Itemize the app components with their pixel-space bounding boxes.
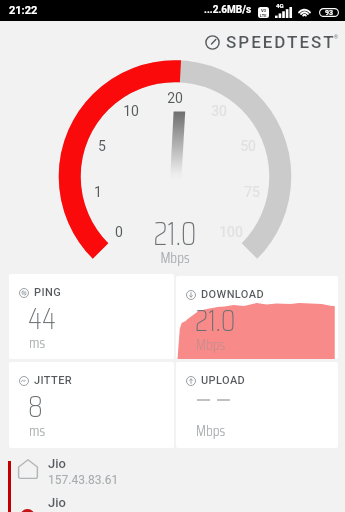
staticText: PING	[34, 286, 62, 299]
staticText: JITTER	[34, 374, 73, 387]
staticText: Jio	[48, 456, 66, 471]
button[interactable]: SPEEDTEST	[205, 30, 340, 54]
staticText: 4G	[276, 2, 284, 9]
staticText: 75	[244, 184, 260, 200]
staticText: 10	[123, 103, 139, 119]
staticText: Jio	[48, 495, 66, 510]
staticText: 21.0	[195, 297, 236, 344]
staticText: Mbps	[131, 246, 219, 270]
staticText: 100	[219, 224, 243, 240]
staticText: ...2.6MB/s	[204, 4, 252, 16]
staticText: ®	[334, 34, 338, 40]
button[interactable]: DOWNLOAD	[176, 276, 338, 359]
staticText: 1	[94, 184, 102, 200]
staticText: 5	[98, 138, 106, 154]
staticText: 50	[240, 138, 256, 154]
button[interactable]: UPLOAD	[176, 362, 338, 448]
staticText: ms	[29, 419, 46, 443]
staticText: 20	[167, 90, 183, 106]
staticText: 8	[28, 383, 43, 430]
button[interactable]: PING	[9, 274, 174, 359]
button[interactable]: JITTER	[9, 362, 174, 448]
staticText: Mbps	[196, 419, 226, 443]
staticText: 21.0	[131, 209, 219, 259]
staticText: 21:22	[9, 4, 38, 17]
staticText: LTE	[260, 13, 267, 18]
staticText: ms	[29, 331, 46, 355]
staticText: 0	[115, 224, 123, 240]
staticText: DOWNLOAD	[201, 288, 264, 301]
other: Home server	[18, 459, 38, 479]
button[interactable]: Jio	[18, 492, 218, 512]
staticText: SPEEDTEST	[226, 32, 336, 52]
staticText: 44	[28, 295, 56, 342]
staticText: UPLOAD	[201, 374, 246, 387]
staticText: 30	[211, 103, 227, 119]
staticText: Mbps	[196, 333, 226, 357]
staticText: 93	[325, 9, 334, 17]
staticText: 157.43.83.61	[48, 473, 119, 486]
button[interactable]: Home server	[18, 456, 218, 486]
staticText: VO	[261, 8, 267, 13]
